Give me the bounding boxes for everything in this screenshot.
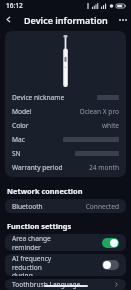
staticText: SN bbox=[12, 149, 21, 158]
staticText: Mac bbox=[12, 135, 25, 144]
staticText: Device nickname bbox=[12, 93, 65, 102]
button[interactable]: Toggle off bbox=[102, 260, 119, 270]
staticText: 16:12 bbox=[6, 1, 23, 10]
staticText: white bbox=[101, 121, 119, 130]
staticText: Toothbrush Language bbox=[12, 280, 81, 289]
staticText: @N Bazos.sk bbox=[80, 270, 125, 280]
staticText: Connected bbox=[85, 202, 119, 211]
staticText: Oclean X pro bbox=[79, 107, 119, 116]
button[interactable]: Color bbox=[12, 118, 119, 132]
staticText: Color bbox=[12, 121, 29, 130]
staticText: Function settings bbox=[7, 221, 72, 231]
button[interactable]: Warranty period bbox=[12, 160, 119, 174]
staticText: Model bbox=[12, 107, 32, 116]
button[interactable]: Mac bbox=[12, 132, 119, 146]
staticText: Area change reminder bbox=[12, 234, 57, 251]
button[interactable]: Area change reminder bbox=[12, 234, 119, 251]
button[interactable]: Bluetooth bbox=[12, 199, 119, 213]
staticText: Device information bbox=[24, 14, 108, 26]
button[interactable]: Back bbox=[0, 11, 17, 28]
staticText: AI frequency reduction during overpressu… bbox=[12, 254, 57, 276]
button[interactable]: AI frequency reduction during overpressu… bbox=[12, 254, 119, 276]
staticText: Network connection bbox=[7, 186, 83, 196]
staticText: Bluetooth bbox=[12, 202, 43, 211]
button[interactable]: Toothbrush Language bbox=[12, 279, 119, 290]
button[interactable]: More options bbox=[114, 11, 131, 28]
button[interactable]: Device nickname bbox=[12, 90, 119, 104]
button[interactable]: Toggle on bbox=[102, 238, 119, 248]
staticText: 24 month bbox=[89, 163, 119, 172]
button[interactable]: Model bbox=[12, 104, 119, 118]
button[interactable]: SN bbox=[12, 146, 119, 160]
staticText: Warranty period bbox=[12, 163, 63, 172]
